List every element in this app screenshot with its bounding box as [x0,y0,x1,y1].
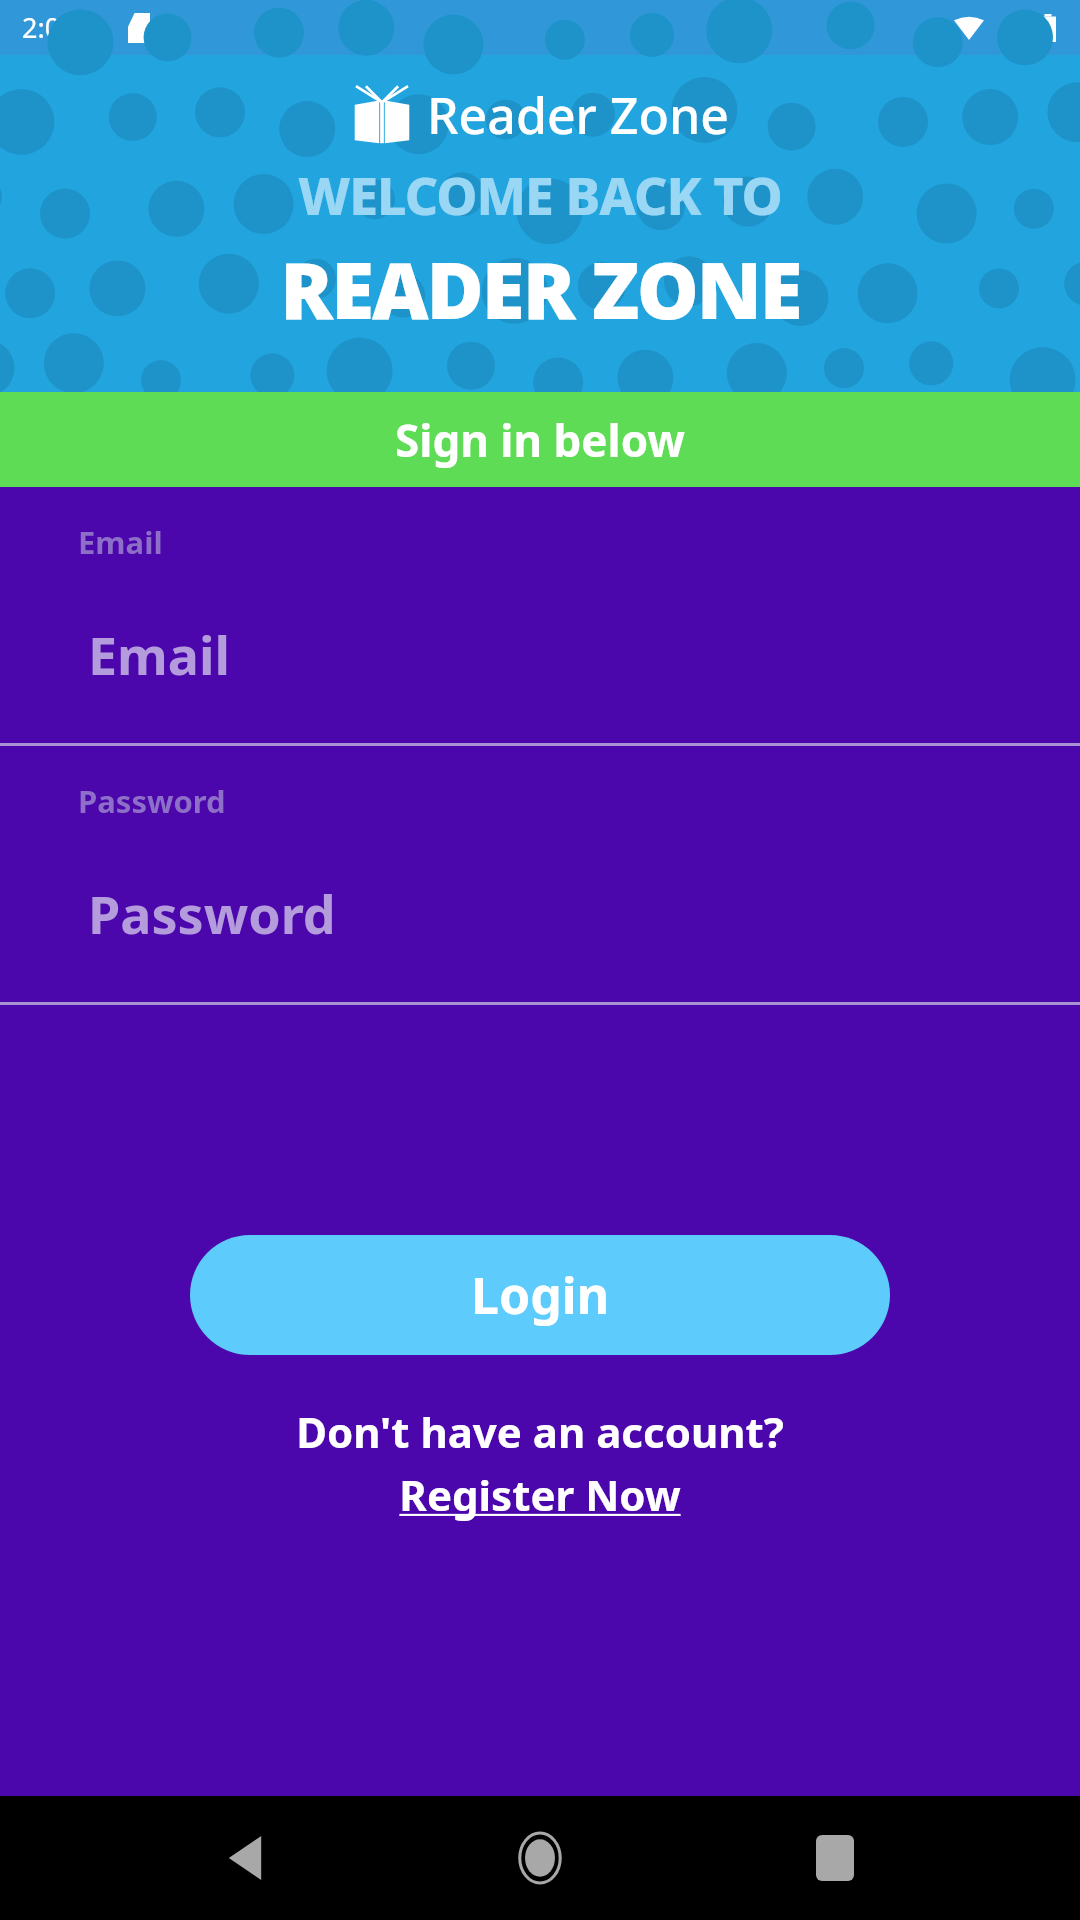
button[interactable]: Recent apps [785,1808,885,1908]
staticText: Reader Zone [427,81,730,149]
staticText: Login [471,1261,610,1329]
button[interactable]: Email [0,487,1080,743]
staticText: Register Now [399,1466,681,1523]
button[interactable]: Register Now [399,1466,681,1523]
staticText: Don't have an account? [296,1403,784,1460]
staticText: 2:03 [22,9,76,46]
button[interactable]: Back [195,1808,295,1908]
staticText: WELCOME BACK TO [298,159,782,230]
staticText: Password [88,878,336,949]
staticText: Email [78,521,163,563]
button[interactable]: Password [0,746,1080,1002]
staticText: Sign in below [395,410,685,470]
button[interactable]: Home [490,1808,590,1908]
staticText: READER ZONE [280,236,801,342]
staticText: Email [88,619,231,690]
button[interactable]: Login [190,1235,890,1355]
staticText: Password [78,780,226,822]
